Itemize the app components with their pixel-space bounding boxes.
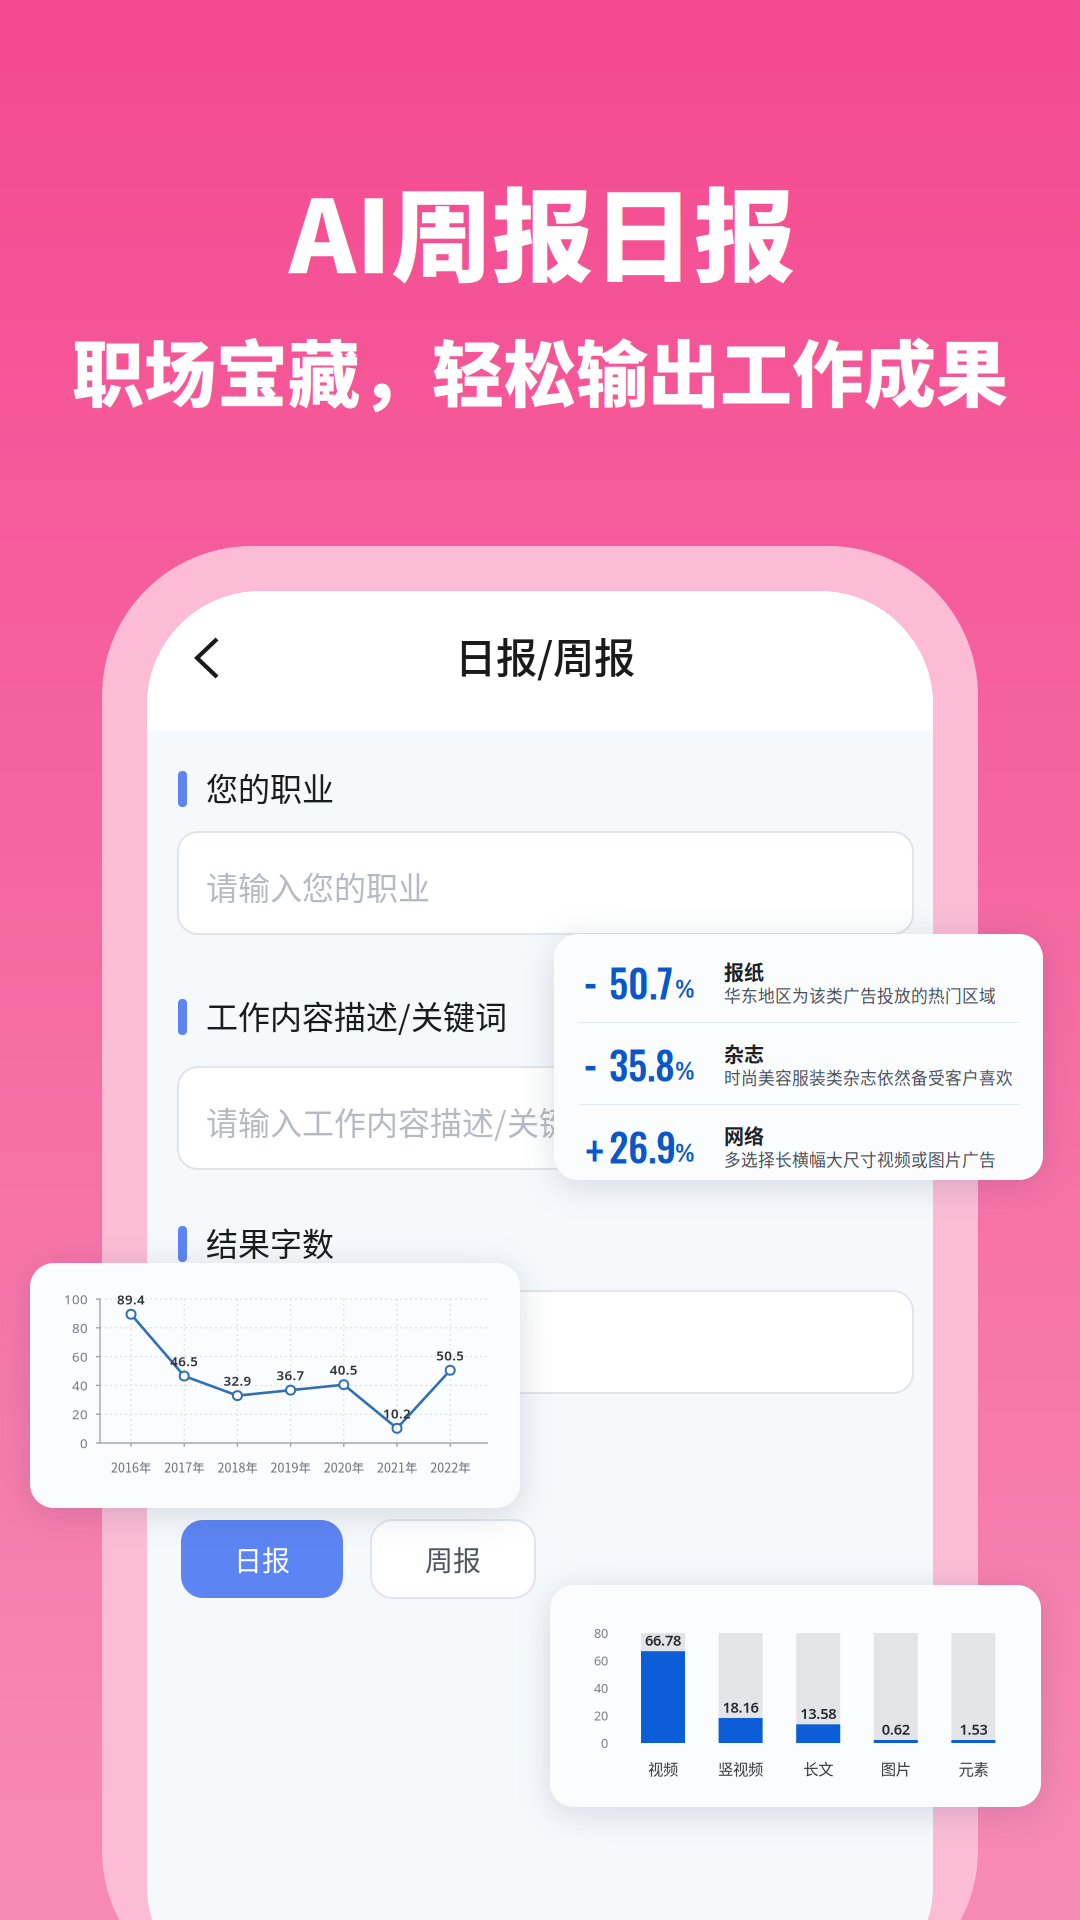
button[interactable]: 请输入您的职业 xyxy=(178,832,913,934)
staticText: 35.8 xyxy=(609,1035,675,1093)
button[interactable] xyxy=(178,1291,913,1393)
staticText: 杂志 xyxy=(724,1039,764,1068)
staticText: 80 xyxy=(72,1319,88,1337)
staticText: 1.53 xyxy=(959,1719,987,1739)
staticText: 视频 xyxy=(648,1757,678,1779)
staticText: 多选择长横幅大尺寸视频或图片广告 xyxy=(724,1147,996,1171)
staticText: 40 xyxy=(72,1376,88,1394)
staticText: 2018年 xyxy=(217,1458,257,1476)
staticText: 日报 xyxy=(234,1539,290,1579)
staticText: 100 xyxy=(64,1290,88,1308)
staticText: 40.5 xyxy=(330,1361,358,1379)
staticText: % xyxy=(675,970,694,1006)
staticText: 20 xyxy=(594,1707,608,1724)
staticText: 周报 xyxy=(425,1539,481,1579)
staticText: 26.9 xyxy=(609,1117,676,1175)
staticText: 40 xyxy=(594,1679,608,1697)
staticText: % xyxy=(675,1134,694,1170)
staticText: 2017年 xyxy=(164,1458,204,1476)
staticText: 36.7 xyxy=(277,1366,305,1384)
staticText: 元素 xyxy=(958,1757,988,1779)
staticText: 您的职业 xyxy=(206,764,334,810)
staticText: 华东地区为该类广告投放的热门区域 xyxy=(724,983,996,1007)
staticText: 时尚美容服装类杂志依然备受客户喜欢 xyxy=(724,1065,1013,1089)
staticText: 0 xyxy=(80,1434,88,1452)
staticText: 2021年 xyxy=(377,1458,417,1476)
staticText: 长文 xyxy=(803,1757,833,1779)
staticText: 60 xyxy=(72,1347,88,1366)
staticText: 网络 xyxy=(724,1121,764,1150)
staticText: 图片 xyxy=(881,1757,911,1779)
staticText: 60 xyxy=(594,1652,608,1669)
staticText: 0.62 xyxy=(882,1719,910,1739)
button[interactable]: 日报 xyxy=(181,1520,343,1598)
staticText: 职场宝藏，轻松输出工作成果 xyxy=(72,317,1008,421)
staticText: % xyxy=(675,1052,694,1088)
staticText: 66.78 xyxy=(645,1630,681,1650)
staticText: 2022年 xyxy=(430,1458,470,1476)
staticText: 18.16 xyxy=(723,1697,759,1717)
button[interactable]: 日报/周报 xyxy=(147,591,933,731)
staticText: - xyxy=(585,1038,596,1092)
staticText: 竖视频 xyxy=(718,1757,763,1779)
staticText: 2020年 xyxy=(324,1458,364,1476)
button[interactable]: 请输入工作内容描述/关键词 xyxy=(178,1067,913,1169)
staticText: AI周报日报 xyxy=(289,156,795,302)
staticText: 结果字数 xyxy=(206,1219,334,1265)
staticText: 13.58 xyxy=(800,1703,836,1723)
staticText: 请输入工作内容描述/关键词 xyxy=(206,1098,603,1144)
staticText: 50.7 xyxy=(609,953,673,1011)
staticText: 报纸 xyxy=(724,957,764,986)
staticText: 工作内容描述/关键词 xyxy=(206,992,507,1038)
staticText: 2016年 xyxy=(111,1458,151,1476)
staticText: 日报/周报 xyxy=(455,625,635,685)
staticText: 10.2 xyxy=(383,1404,411,1422)
staticText: 请输入您的职业 xyxy=(206,863,430,909)
staticText: - xyxy=(585,956,596,1010)
staticText: 50.5 xyxy=(436,1346,464,1364)
staticText: 2019年 xyxy=(271,1458,311,1476)
staticText: 80 xyxy=(594,1624,608,1642)
staticText: 46.5 xyxy=(170,1352,198,1370)
staticText: + xyxy=(585,1120,604,1174)
staticText: 32.9 xyxy=(223,1371,251,1390)
button[interactable]: 周报 xyxy=(371,1520,535,1598)
staticText: 0 xyxy=(601,1734,608,1752)
staticText: 20 xyxy=(72,1405,88,1423)
staticText: 89.4 xyxy=(117,1290,145,1308)
